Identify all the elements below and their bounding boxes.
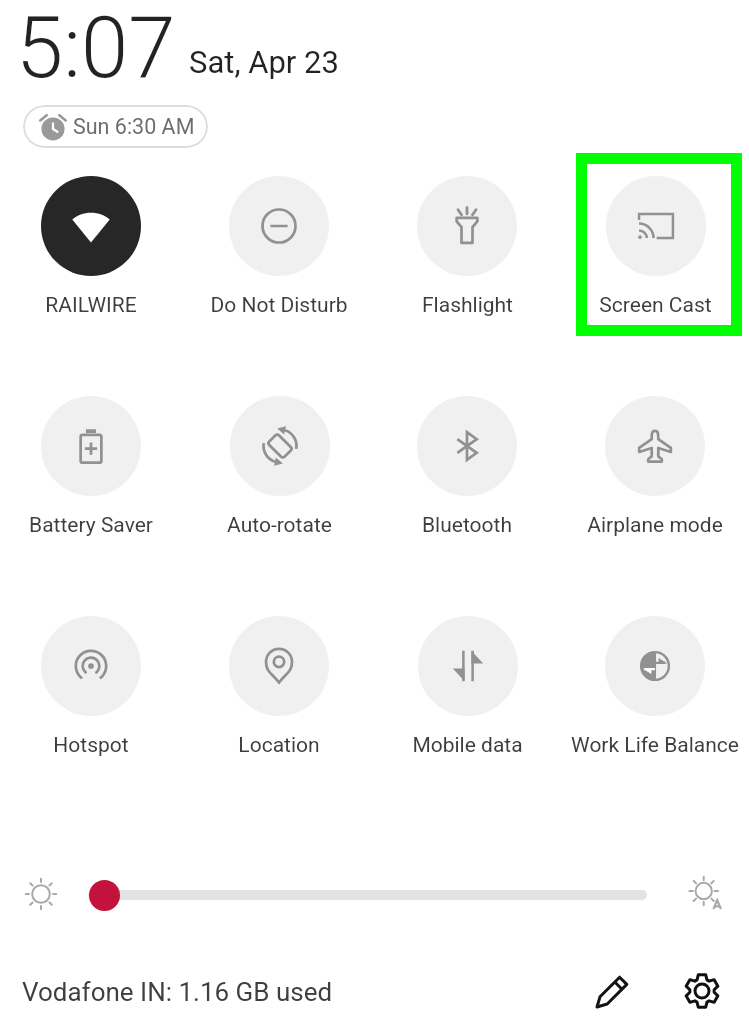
button[interactable]: Mobile data xyxy=(373,616,561,796)
button[interactable]: Hotspot xyxy=(0,616,185,796)
button[interactable]: Settings xyxy=(678,967,726,1015)
staticText: Auto-rotate xyxy=(227,513,332,538)
staticText: Sun 6:30 AM xyxy=(73,114,195,139)
button[interactable]: Brightness slider xyxy=(88,890,647,900)
button[interactable]: Bluetooth xyxy=(373,396,561,576)
staticText: 5:07 xyxy=(16,0,176,98)
button[interactable]: Battery Saver xyxy=(0,396,185,576)
staticText: Airplane mode xyxy=(587,513,723,538)
button[interactable]: Sun 6:30 AM xyxy=(23,105,208,148)
staticText: Work Life Balance xyxy=(571,733,739,758)
staticText: Screen Cast xyxy=(599,293,712,318)
button[interactable]: Brightness low xyxy=(22,875,60,913)
button[interactable]: Work Life Balance xyxy=(561,616,749,796)
button[interactable]: Do Not Disturb xyxy=(185,176,373,356)
button[interactable]: RAILWIRE xyxy=(0,176,185,356)
staticText: Battery Saver xyxy=(29,513,153,538)
button[interactable]: Screen Cast xyxy=(561,176,749,356)
staticText: Location xyxy=(238,733,320,758)
button[interactable]: Flashlight xyxy=(373,176,561,356)
staticText: Hotspot xyxy=(53,733,129,758)
button[interactable]: Location xyxy=(185,616,373,796)
staticText: Do Not Disturb xyxy=(210,293,348,318)
staticText: Vodafone IN: 1.16 GB used xyxy=(22,977,333,1007)
button[interactable]: Airplane mode xyxy=(561,396,749,576)
staticText: Mobile data xyxy=(412,733,523,758)
button[interactable]: Auto-rotate xyxy=(185,396,373,576)
staticText: Flashlight xyxy=(422,293,513,318)
button[interactable]: Auto brightness xyxy=(687,875,725,913)
button[interactable]: Edit xyxy=(589,967,637,1015)
staticText: Bluetooth xyxy=(422,513,512,538)
staticText: Sat, Apr 23 xyxy=(189,44,339,80)
staticText: RAILWIRE xyxy=(45,293,137,318)
